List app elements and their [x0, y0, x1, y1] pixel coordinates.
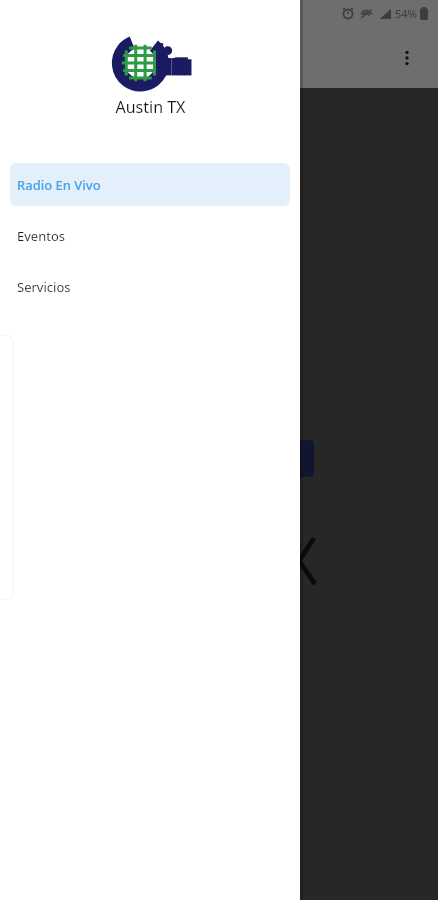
- staticText: Radio En Vivo: [17, 176, 101, 194]
- staticText: Eventos: [17, 227, 65, 245]
- button[interactable]: More options: [386, 37, 428, 79]
- staticText: 54%: [395, 6, 417, 21]
- staticText: Austin TX: [115, 96, 186, 118]
- button[interactable]: Eventos: [10, 214, 290, 257]
- staticText: Servicios: [17, 278, 71, 296]
- button[interactable]: Servicios: [10, 265, 290, 308]
- button[interactable]: Radio En Vivo: [10, 163, 290, 206]
